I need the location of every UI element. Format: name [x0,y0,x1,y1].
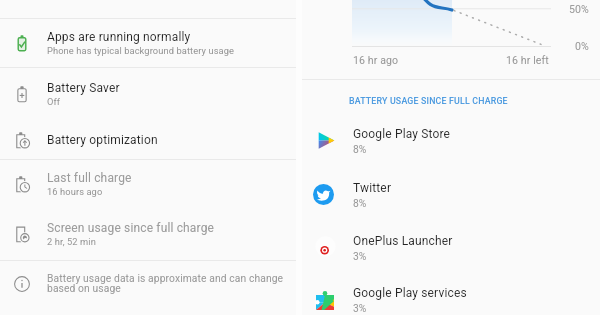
staticText: 3% [353,302,367,314]
staticText: Off [47,96,61,107]
staticText: 50% [569,3,589,15]
staticText: OnePlus Launcher [353,234,453,248]
staticText: Google Play Store [353,127,451,141]
staticText: 16 hours ago [47,186,103,197]
staticText: Twitter [353,181,392,195]
staticText: Battery optimization [47,133,158,147]
staticText: Screen usage since full charge [47,221,215,235]
staticText: 8% [353,143,367,155]
staticText: 8% [353,197,367,209]
button[interactable]: Screen usage since full charge [0,213,297,257]
button[interactable]: OnePlus Launcher [302,224,600,269]
staticText: 3% [353,250,367,262]
staticText: Battery usage data is approximate and ca… [47,272,287,295]
staticText: Google Play services [353,286,467,300]
staticText: 16 hr left [506,54,549,66]
staticText: BATTERY USAGE SINCE FULL CHARGE [349,96,508,106]
staticText: 0% [575,40,589,52]
button[interactable]: Last full charge [0,163,297,207]
staticText: Last full charge [47,171,132,185]
staticText: Apps are running normally [47,30,191,44]
button[interactable]: Apps are running normally [0,22,297,66]
button[interactable]: Google Play services [302,276,600,315]
staticText: 2 hr, 52 min [47,236,96,247]
button[interactable]: Twitter [302,171,600,216]
button[interactable]: Battery usage data is approximate and ca… [0,266,297,312]
staticText: Phone has typical background battery usa… [47,45,235,56]
button[interactable]: Battery Saver [0,73,297,117]
button[interactable]: Battery optimization [0,125,297,160]
button[interactable]: Google Play Store [302,117,600,162]
staticText: 16 hr ago [353,54,399,66]
staticText: Battery Saver [47,81,120,95]
